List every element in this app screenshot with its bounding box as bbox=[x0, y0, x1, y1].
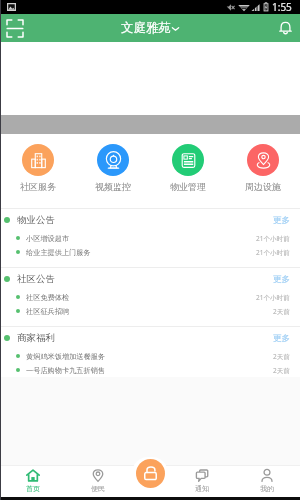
staticText: 黄焖鸡米饭增加送餐服务 bbox=[26, 352, 106, 361]
staticText: 社区公告 bbox=[17, 273, 55, 285]
staticText: 2天前 bbox=[273, 352, 290, 361]
button[interactable]: 黄焖鸡米饭增加送餐服务 bbox=[16, 349, 290, 363]
staticText: 2天前 bbox=[273, 366, 290, 375]
button[interactable]: 商家福利 bbox=[4, 327, 290, 349]
button[interactable]: 周边设施 bbox=[225, 144, 300, 192]
staticText: 1:55 bbox=[272, 0, 292, 14]
button[interactable]: 社区征兵招聘 bbox=[16, 304, 290, 318]
staticText: 商家福利 bbox=[17, 332, 55, 344]
staticText: 周边设施 bbox=[245, 181, 281, 192]
staticText: 通知 bbox=[195, 484, 209, 493]
staticText: 小区增设超市 bbox=[26, 234, 70, 243]
button[interactable]: 便民 bbox=[66, 465, 130, 497]
staticText: 2天前 bbox=[273, 307, 290, 316]
staticText: 社区征兵招聘 bbox=[26, 307, 70, 316]
button[interactable]: 社区免费体检 bbox=[16, 290, 290, 304]
button[interactable]: 通知 bbox=[170, 465, 234, 497]
button[interactable]: Unlock door bbox=[136, 459, 165, 488]
staticText: 更多 bbox=[273, 333, 290, 344]
staticText: 更多 bbox=[273, 215, 290, 226]
staticText: 21个小时前 bbox=[256, 248, 290, 257]
staticText: 便民 bbox=[91, 484, 105, 493]
button[interactable]: 物业公告 bbox=[4, 209, 290, 231]
staticText: 更多 bbox=[273, 274, 290, 285]
button[interactable]: 给业主提供上门服务 bbox=[16, 245, 290, 259]
button[interactable]: 我的 bbox=[234, 465, 300, 497]
button[interactable]: 社区服务 bbox=[0, 144, 75, 192]
button[interactable]: 文庭雅苑 bbox=[121, 20, 180, 36]
button[interactable]: Notifications bbox=[270, 14, 300, 42]
button[interactable]: 一号店购物卡九五折销售 bbox=[16, 363, 290, 377]
staticText: 21个小时前 bbox=[256, 293, 290, 302]
button[interactable]: 社区公告 bbox=[4, 268, 290, 290]
staticText: 物业管理 bbox=[170, 181, 206, 192]
staticText: 我的 bbox=[260, 484, 274, 493]
staticText: 21个小时前 bbox=[256, 234, 290, 243]
button[interactable]: 首页 bbox=[0, 465, 66, 497]
staticText: 首页 bbox=[26, 484, 40, 493]
staticText: 社区免费体检 bbox=[26, 293, 70, 302]
staticText: 物业公告 bbox=[17, 214, 55, 226]
staticText: 给业主提供上门服务 bbox=[26, 248, 91, 257]
button[interactable]: 物业管理 bbox=[150, 144, 225, 192]
button[interactable]: 小区增设超市 bbox=[16, 231, 290, 245]
button[interactable]: Scan QR code bbox=[0, 14, 30, 42]
staticText: 一号店购物卡九五折销售 bbox=[26, 366, 106, 375]
staticText: 社区服务 bbox=[20, 181, 56, 192]
staticText: 视频监控 bbox=[95, 181, 131, 192]
staticText: 文庭雅苑 bbox=[121, 20, 171, 36]
button[interactable]: 视频监控 bbox=[75, 144, 150, 192]
